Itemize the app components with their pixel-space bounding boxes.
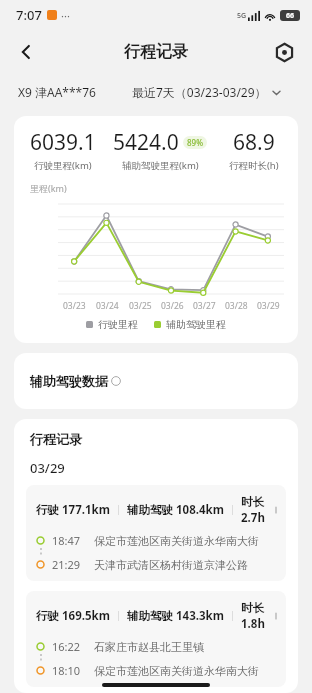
staticText: 21:29: [52, 557, 81, 572]
staticText: 行程记录: [124, 42, 188, 62]
button[interactable]: 行驶 177.1km: [26, 485, 286, 581]
staticText: 最近7天（03/23-03/29）: [132, 84, 267, 100]
staticText: 18:47: [52, 533, 81, 548]
staticText: 03/23: [63, 300, 86, 312]
staticText: 时长 2.7h: [241, 494, 276, 526]
staticText: 5G: [237, 11, 247, 21]
staticText: 里程(km): [30, 182, 67, 194]
button[interactable]: 最近7天（03/23-03/29）: [132, 84, 282, 100]
staticText: 辅助驾驶数据: [30, 373, 108, 389]
staticText: 辅助驾驶里程(km): [122, 159, 199, 172]
staticText: 行驶里程(km): [34, 159, 92, 172]
button[interactable]: 辅助驾驶数据: [14, 353, 298, 409]
staticText: 03/25: [129, 300, 152, 312]
staticText: 天津市武清区杨村街道京津公路: [94, 558, 248, 572]
staticText: 保定市莲池区南关街道永华南大街: [94, 664, 259, 678]
staticText: 03/29: [30, 459, 65, 477]
staticText: 7:07: [16, 6, 42, 24]
staticText: 行驶 169.5km: [36, 608, 110, 624]
staticText: 03/29: [257, 300, 280, 312]
staticText: 保定市莲池区南关街道永华南大街: [94, 534, 259, 548]
staticText: 68.9: [233, 128, 275, 157]
staticText: ···: [61, 8, 70, 23]
staticText: 89%: [187, 137, 203, 148]
button[interactable]: Settings: [266, 34, 302, 70]
staticText: 03/26: [161, 300, 184, 312]
button[interactable]: 行驶 169.5km: [26, 591, 286, 687]
staticText: 行驶里程: [98, 318, 138, 331]
staticText: 03/27: [193, 300, 216, 312]
staticText: 6039.1: [30, 128, 96, 157]
staticText: X9 津AA***76: [18, 84, 96, 100]
staticText: 辅助驾驶里程: [166, 318, 226, 331]
staticText: 时长 1.8h: [241, 600, 276, 632]
staticText: 行程记录: [30, 431, 82, 447]
staticText: 辅助驾驶 108.4km: [127, 502, 224, 518]
staticText: 03/24: [96, 300, 119, 312]
staticText: 03/28: [225, 300, 248, 312]
staticText: 辅助驾驶 143.3km: [127, 608, 224, 624]
staticText: 18:10: [52, 663, 81, 678]
staticText: 66: [286, 11, 295, 21]
staticText: 石家庄市赵县北王里镇: [94, 640, 204, 654]
button[interactable]: X9 津AA***76: [18, 84, 96, 100]
staticText: 16:22: [52, 639, 81, 654]
staticText: 5424.0: [113, 128, 179, 157]
staticText: 行程时长(h): [229, 159, 279, 172]
button[interactable]: Back: [8, 34, 44, 70]
staticText: 行驶 177.1km: [36, 502, 110, 518]
